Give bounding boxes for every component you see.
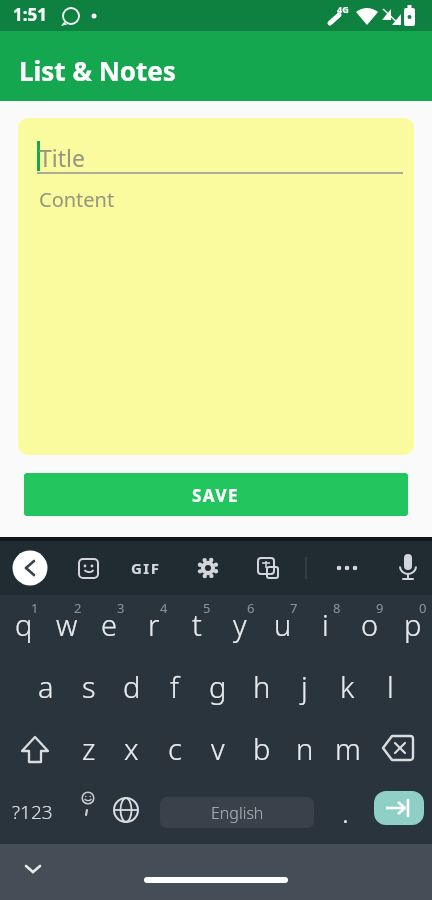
button[interactable] [144,877,288,883]
staticText: 4G [337,3,349,15]
button[interactable]: x [110,717,153,779]
staticText: ?123 [12,799,53,825]
staticText: b [253,729,271,768]
staticText: o [361,605,379,644]
staticText: z [82,729,96,768]
staticText: 1:51 [13,3,47,26]
staticText: n [296,729,314,768]
button[interactable]: Title [18,118,414,455]
button[interactable] [9,544,51,592]
staticText: c [168,729,182,768]
button[interactable]: o [348,593,391,655]
staticText: 9 [376,599,384,617]
button[interactable]: f [153,655,196,717]
button[interactable]: English [150,781,324,843]
staticText: i [322,605,329,644]
staticText: SAVE [192,484,240,507]
staticText: 4 [160,599,168,617]
button[interactable]: q [2,593,45,655]
staticText: Content [39,186,115,213]
button[interactable] [64,781,107,843]
button[interactable]: y [218,593,261,655]
button[interactable] [126,544,168,592]
staticText: p [404,605,422,644]
button[interactable]: h [240,655,283,717]
staticText: a [38,667,54,706]
staticText: f [170,667,179,706]
staticText: x [124,729,139,768]
button[interactable]: s [67,655,110,717]
button[interactable] [326,544,368,592]
button[interactable] [187,544,229,592]
staticText: l [387,667,394,706]
button[interactable]: n [283,717,326,779]
button[interactable]: m [326,717,369,779]
staticText: List & Notes [19,53,176,88]
staticText: m [335,729,361,768]
staticText: . [342,793,349,831]
button[interactable]: . [324,781,367,843]
button[interactable] [12,850,54,884]
staticText: 5 [203,599,211,617]
staticText: j [301,667,308,706]
button[interactable]: c [153,717,196,779]
staticText: s [82,667,96,706]
button[interactable]: k [326,655,369,717]
staticText: 0 [419,599,427,617]
staticText: r [148,605,160,644]
button[interactable]: e [88,593,131,655]
staticText: w [56,605,78,644]
staticText: 7 [290,599,298,617]
button[interactable] [67,544,109,592]
button[interactable]: z [67,717,110,779]
button[interactable]: ?123 [0,781,65,843]
button[interactable]: v [196,717,239,779]
button[interactable] [107,781,150,843]
button[interactable]: w [45,593,88,655]
button[interactable]: u [261,593,304,655]
staticText: 6 [247,599,255,617]
button[interactable] [247,544,289,592]
staticText: k [340,667,355,706]
button[interactable] [387,544,429,592]
staticText: v [211,729,225,768]
button[interactable] [367,781,432,843]
staticText: 3 [117,599,125,617]
button[interactable]: j [283,655,326,717]
staticText: t [192,605,202,644]
button[interactable] [0,719,64,781]
staticText: d [123,667,141,706]
staticText: 1 [31,599,39,617]
staticText: Title [39,142,85,173]
button[interactable]: b [240,717,283,779]
button[interactable]: g [196,655,239,717]
staticText: e [101,605,118,644]
staticText: g [209,667,227,706]
button[interactable]: l [369,655,412,717]
button[interactable]: d [110,655,153,717]
button[interactable]: i [304,593,347,655]
staticText: q [15,605,33,644]
button[interactable]: t [175,593,218,655]
staticText: GIF [131,558,161,578]
staticText: 8 [333,599,341,617]
staticText: h [253,667,271,706]
staticText: u [274,605,292,644]
staticText: y [233,605,247,644]
button[interactable]: SAVE [24,473,408,516]
button[interactable]: p [391,593,432,655]
button[interactable] [367,719,432,781]
button[interactable]: r [132,593,175,655]
button[interactable]: a [24,655,67,717]
staticText: 2 [74,599,82,617]
staticText: English [211,802,264,824]
